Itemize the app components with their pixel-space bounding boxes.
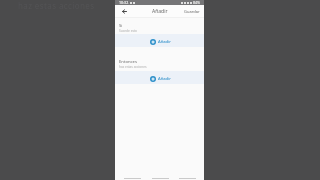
- button[interactable]: Navigation: [176, 176, 198, 180]
- staticText: 84%: [193, 0, 201, 5]
- staticText: haz estas acciones: [119, 65, 147, 69]
- button[interactable]: Navigation: [121, 176, 143, 180]
- staticText: 10:32: [119, 0, 129, 5]
- staticText: Añadir: [158, 39, 171, 45]
- button[interactable]: Guardar: [184, 9, 200, 14]
- staticText: Si: [119, 23, 123, 29]
- staticText: Añadir: [158, 76, 171, 82]
- staticText: Sucede esto: [119, 29, 138, 33]
- button[interactable]: Navigation: [149, 176, 171, 180]
- button[interactable]: Back: [120, 7, 129, 16]
- staticText: Añadir: [152, 8, 168, 15]
- staticText: Entonces: [119, 59, 137, 65]
- button[interactable]: Añadir: [115, 71, 204, 84]
- button[interactable]: Añadir: [115, 34, 204, 47]
- staticText: Guardar: [184, 9, 200, 14]
